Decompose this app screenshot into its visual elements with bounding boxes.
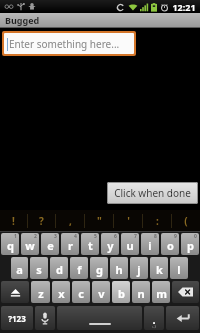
button[interactable]: ?: [28, 210, 55, 232]
staticText: d: [56, 262, 63, 277]
button[interactable]: Delete: [172, 281, 199, 303]
button[interactable]: z: [31, 281, 50, 303]
staticText: h: [115, 262, 123, 277]
button[interactable]: q: [1, 233, 19, 255]
button[interactable]: j: [130, 257, 148, 279]
staticText: f: [77, 262, 82, 277]
staticText: g: [96, 262, 103, 277]
staticText: n: [137, 286, 145, 301]
button[interactable]: m: [152, 281, 170, 303]
staticText: (: [184, 214, 188, 228]
button[interactable]: Voice input: [35, 306, 55, 330]
staticText: 5: [94, 233, 97, 240]
button[interactable]: ': [114, 210, 142, 232]
staticText: 9: [174, 233, 177, 240]
button[interactable]: Period: [144, 306, 164, 330]
staticText: ,: [69, 214, 72, 228]
staticText: :: [156, 214, 159, 228]
button[interactable]: (: [172, 210, 200, 232]
staticText: Enter something here...: [9, 37, 120, 51]
staticText: v: [98, 286, 105, 301]
staticText: 1: [14, 233, 17, 240]
staticText: s: [36, 262, 42, 277]
staticText: c: [78, 286, 84, 301]
staticText: z: [38, 286, 44, 301]
button[interactable]: u: [121, 233, 139, 255]
button[interactable]: w: [21, 233, 39, 255]
button[interactable]: Click when done: [114, 182, 191, 204]
button[interactable]: y: [101, 233, 119, 255]
staticText: x: [58, 286, 65, 301]
staticText: 3: [54, 233, 57, 240]
button[interactable]: b: [112, 281, 130, 303]
staticText: Click when done: [114, 186, 191, 200]
button[interactable]: Enter: [166, 306, 199, 330]
staticText: p: [187, 238, 194, 253]
button[interactable]: o: [161, 233, 179, 255]
button[interactable]: v: [92, 281, 110, 303]
staticText: 4: [74, 233, 77, 240]
staticText: i: [148, 238, 152, 253]
button[interactable]: i: [141, 233, 159, 255]
staticText: r: [68, 238, 73, 253]
button[interactable]: n: [132, 281, 150, 303]
staticText: e: [47, 238, 54, 253]
button[interactable]: k: [150, 257, 168, 279]
staticText: m: [156, 286, 167, 301]
staticText: 7: [134, 233, 137, 240]
staticText: u: [126, 238, 134, 253]
staticText: a: [16, 262, 23, 277]
button[interactable]: l: [170, 257, 188, 279]
button[interactable]: :: [143, 210, 171, 232]
staticText: w: [25, 238, 35, 253]
staticText: 6: [114, 233, 117, 240]
button[interactable]: Space: [57, 306, 142, 330]
staticText: 8: [154, 233, 157, 240]
button[interactable]: a: [11, 257, 28, 279]
button[interactable]: !: [0, 210, 27, 232]
button[interactable]: Shift: [1, 281, 29, 303]
staticText: l: [177, 262, 181, 277]
staticText: 2: [34, 233, 37, 240]
staticText: k: [156, 262, 163, 277]
staticText: 0: [194, 233, 197, 240]
staticText: ?: [39, 214, 44, 228]
button[interactable]: Symbols: [1, 306, 33, 330]
staticText: y: [107, 238, 114, 253]
button[interactable]: p: [181, 233, 199, 255]
button[interactable]: e: [41, 233, 59, 255]
button[interactable]: Enter something here...: [4, 33, 134, 54]
button[interactable]: c: [72, 281, 90, 303]
staticText: :-): [152, 324, 156, 329]
button[interactable]: h: [110, 257, 128, 279]
staticText: Bugged: [5, 14, 40, 26]
staticText: o: [167, 238, 174, 253]
staticText: .: [152, 312, 156, 327]
button[interactable]: x: [52, 281, 70, 303]
staticText: q: [7, 238, 14, 253]
staticText: b: [118, 286, 125, 301]
staticText: t: [88, 238, 93, 253]
staticText: !: [12, 214, 15, 228]
button[interactable]: g: [90, 257, 108, 279]
button[interactable]: r: [61, 233, 79, 255]
button[interactable]: s: [30, 257, 48, 279]
button[interactable]: ,: [56, 210, 84, 232]
staticText: ': [127, 214, 130, 228]
staticText: ?123: [8, 313, 26, 324]
staticText: ": [97, 214, 102, 228]
button[interactable]: ": [85, 210, 113, 232]
button[interactable]: t: [81, 233, 99, 255]
button[interactable]: f: [70, 257, 88, 279]
staticText: j: [137, 262, 141, 277]
staticText: 12:21: [172, 1, 196, 13]
button[interactable]: d: [50, 257, 68, 279]
